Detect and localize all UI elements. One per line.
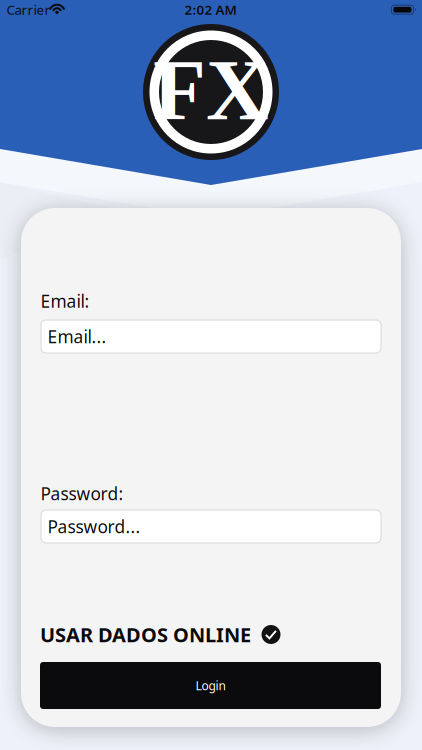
button[interactable]: Password...: [41, 510, 381, 543]
staticText: Carrier: [6, 1, 50, 18]
staticText: Password:: [40, 482, 123, 505]
staticText: Login: [195, 677, 225, 693]
staticText: Password...: [47, 515, 140, 538]
staticText: Email...: [47, 325, 106, 348]
button[interactable]: USAR DADOS ONLINE: [40, 621, 422, 648]
staticText: USAR DADOS ONLINE: [40, 621, 251, 648]
staticText: 2:02 AM: [184, 1, 236, 18]
button[interactable]: Email...: [41, 320, 381, 353]
button[interactable]: Login: [40, 662, 381, 709]
staticText: FX: [153, 42, 269, 138]
staticText: Email:: [40, 289, 89, 312]
